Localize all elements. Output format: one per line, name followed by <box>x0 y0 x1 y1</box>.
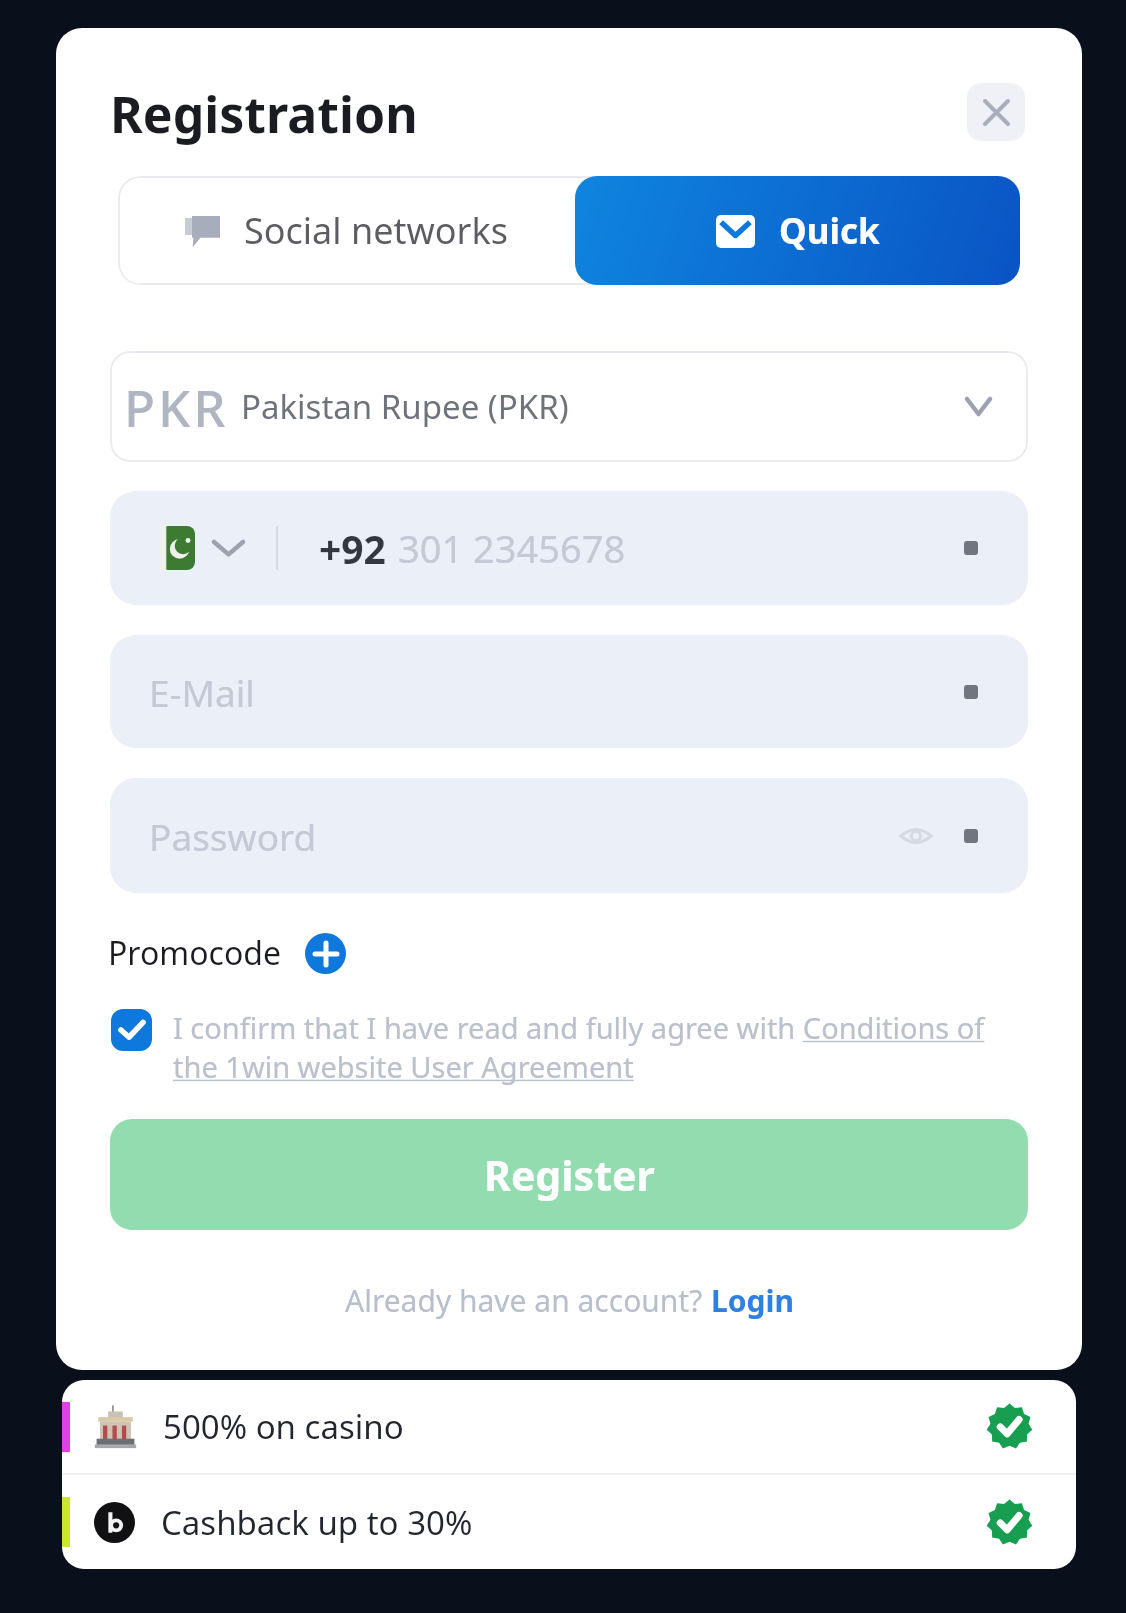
button[interactable]: Close <box>967 83 1025 141</box>
staticText: 500% on casino <box>163 1404 404 1449</box>
staticText: Promocode <box>108 931 282 975</box>
staticText: I confirm that I have read and fully agr… <box>173 1008 1011 1086</box>
staticText: Cashback up to 30% <box>161 1500 473 1545</box>
button[interactable]: Social networks <box>118 176 575 285</box>
staticText: E-Mail <box>149 667 255 717</box>
staticText: Pakistan Rupee (PKR) <box>241 384 569 429</box>
button[interactable]: Show password <box>898 818 934 854</box>
staticText: Password <box>149 811 317 861</box>
staticText: PKR <box>124 372 229 441</box>
staticText: Already have an account? <box>345 1280 711 1321</box>
staticText: Social networks <box>244 206 508 255</box>
button[interactable]: Register <box>110 1119 1028 1230</box>
button[interactable]: I confirm that I have read and fully agr… <box>111 1009 1011 1087</box>
staticText: Registration <box>110 80 418 148</box>
button[interactable]: E-Mail <box>110 635 1028 748</box>
button[interactable]: 500% on casino <box>62 1380 1076 1473</box>
staticText: +92 <box>319 522 386 575</box>
button[interactable]: Select country code <box>154 491 249 605</box>
button[interactable]: Password <box>110 778 1028 893</box>
staticText: Register <box>484 1147 655 1203</box>
button[interactable]: Login <box>711 1280 794 1321</box>
button[interactable]: Promocode <box>108 927 346 979</box>
staticText: 301 2345678 <box>398 522 626 574</box>
button[interactable]: Cashback up to 30% <box>62 1475 1076 1569</box>
staticText: Quick <box>779 207 880 255</box>
button[interactable]: PKR <box>110 351 1028 462</box>
button[interactable]: Quick <box>575 176 1020 285</box>
